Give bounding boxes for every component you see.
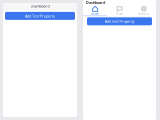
- staticText: Dashboard: [30, 3, 49, 9]
- staticText: Add Test Property: [25, 13, 55, 19]
- button[interactable]: Add Test Property: [87, 17, 152, 25]
- button[interactable]: Settings: [132, 6, 156, 16]
- staticText: Settings: [138, 12, 149, 16]
- staticText: Leads: [116, 12, 123, 16]
- button[interactable]: Leads: [107, 6, 132, 16]
- staticText: Dashboard: [86, 0, 105, 5]
- button[interactable]: Home: [83, 6, 107, 16]
- button[interactable]: Add Test Property: [5, 12, 75, 20]
- staticText: Add Test Property: [104, 19, 134, 24]
- staticText: Home: [91, 12, 99, 16]
